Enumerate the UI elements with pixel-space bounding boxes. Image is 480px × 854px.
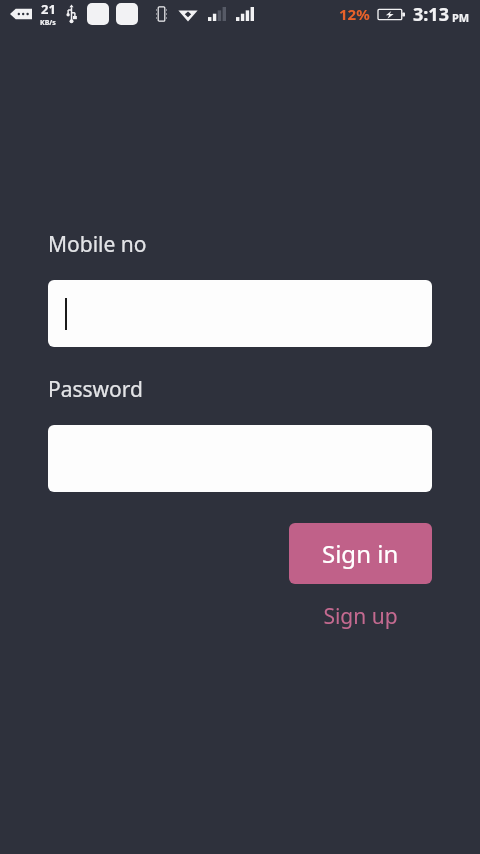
button[interactable]: [48, 425, 432, 492]
button[interactable]: [48, 280, 432, 347]
button[interactable]: Sign up: [289, 596, 432, 636]
staticText: Sign up: [323, 602, 398, 631]
staticText: 3:13: [413, 2, 449, 27]
staticText: 12%: [339, 4, 370, 24]
staticText: Mobile no: [48, 230, 147, 259]
staticText: PM: [452, 10, 470, 25]
staticText: 21: [41, 0, 56, 18]
staticText: Sign in: [322, 537, 399, 570]
staticText: KB/s: [40, 18, 56, 28]
staticText: Password: [48, 375, 143, 404]
button[interactable]: Sign in: [289, 523, 432, 584]
